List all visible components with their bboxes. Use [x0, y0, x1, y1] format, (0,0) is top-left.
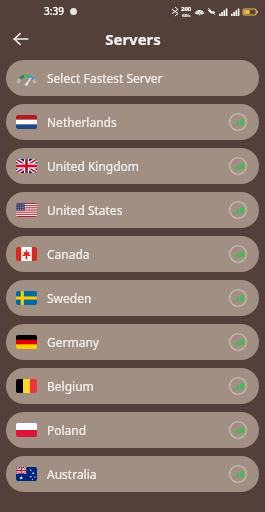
staticText: Select Fastest Server [47, 70, 163, 86]
button[interactable]: Canada [6, 236, 259, 272]
staticText: 3:39 [44, 4, 64, 18]
staticText: Belgium [47, 378, 94, 394]
button[interactable]: Australia [6, 456, 259, 492]
staticText: Germany [47, 334, 99, 350]
button[interactable]: Sweden [6, 280, 259, 316]
staticText: KB/s [182, 13, 191, 18]
button[interactable]: Poland [6, 412, 259, 448]
button[interactable]: Germany [6, 324, 259, 360]
staticText: 200 [181, 5, 192, 13]
staticText: Australia [47, 466, 97, 482]
button[interactable]: Belgium [6, 368, 259, 404]
button[interactable]: United Kingdom [6, 148, 259, 184]
staticText: United Kingdom [47, 158, 140, 174]
staticText: Poland [47, 422, 87, 438]
button[interactable]: Select Fastest Server [6, 60, 259, 96]
staticText: United States [47, 202, 123, 218]
staticText: Servers [105, 29, 161, 49]
button[interactable]: Back [8, 26, 34, 52]
button[interactable]: United States [6, 192, 259, 228]
button[interactable]: Netherlands [6, 104, 259, 140]
staticText: Sweden [47, 290, 92, 306]
staticText: Netherlands [47, 114, 117, 130]
staticText: Canada [47, 246, 90, 262]
